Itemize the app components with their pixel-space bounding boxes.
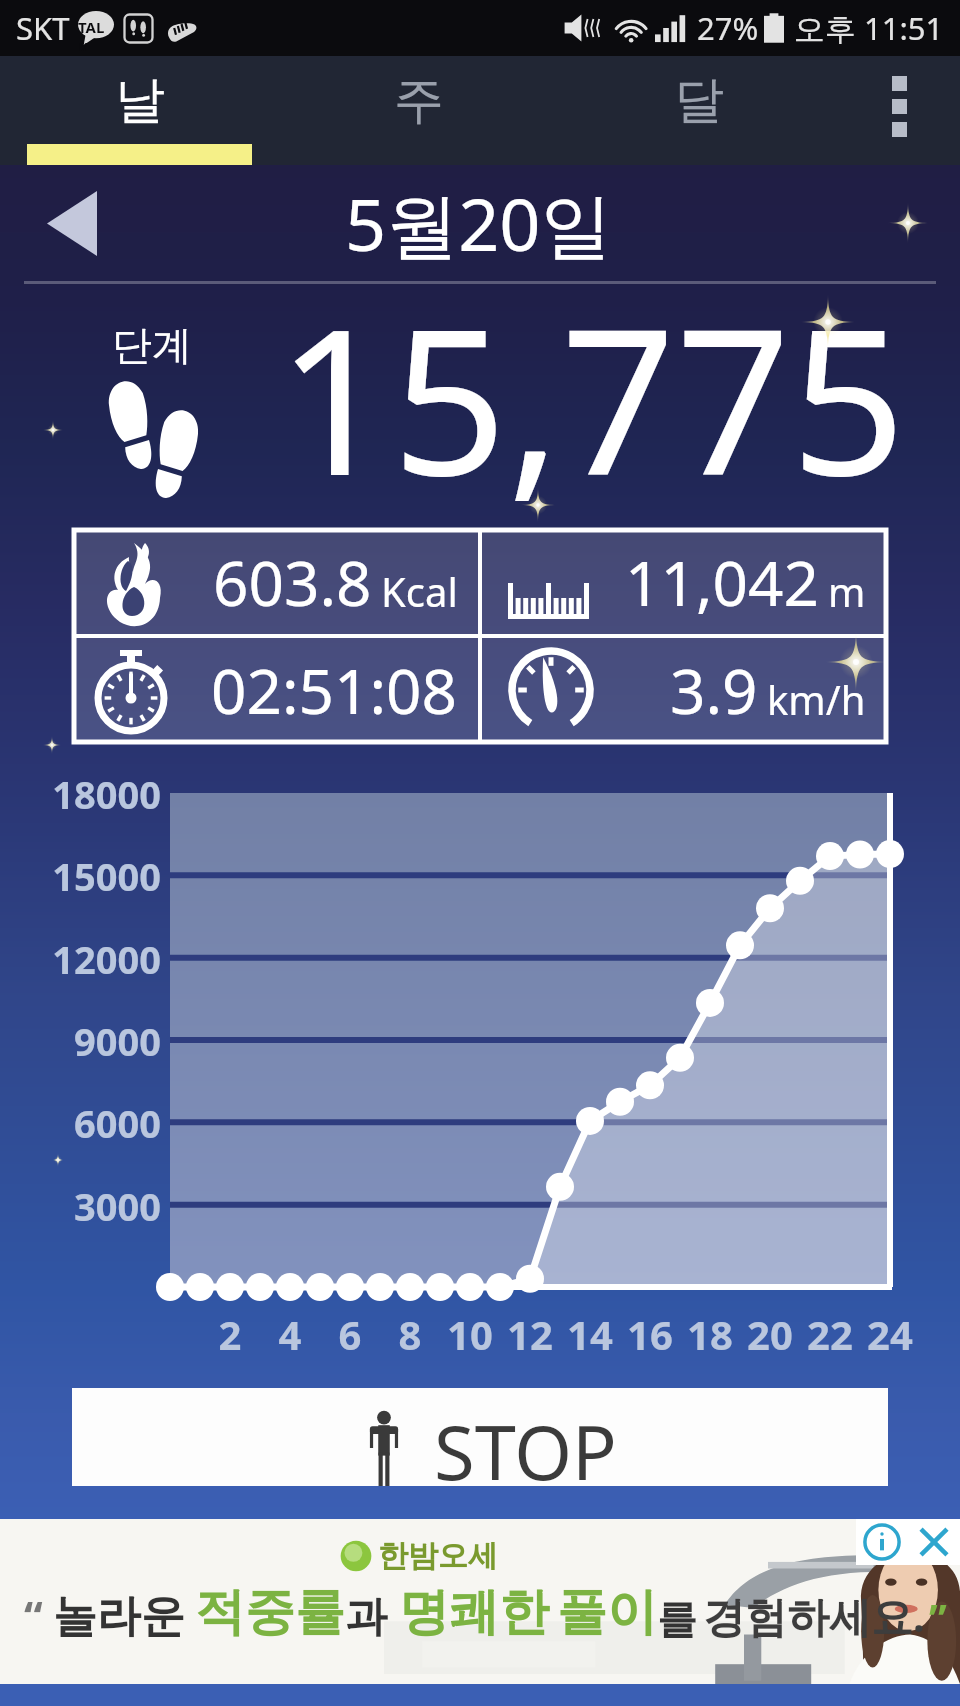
staticText: 풀이 xyxy=(557,1581,657,1644)
button[interactable]: STOP xyxy=(72,1388,888,1486)
staticText: 달 xyxy=(674,69,724,132)
staticText: 12 xyxy=(495,1307,565,1361)
staticText: 주 xyxy=(394,69,444,132)
staticText: 9000 xyxy=(0,1015,161,1067)
staticText: 를 xyxy=(657,1594,697,1644)
button[interactable]: 3.9 xyxy=(480,636,888,744)
staticText: 경험하세요. xyxy=(703,1587,925,1644)
staticText: STOP xyxy=(434,1401,617,1499)
button[interactable]: More options xyxy=(838,56,960,165)
button[interactable]: 달 xyxy=(559,56,839,165)
button[interactable]: Close ad xyxy=(908,1519,960,1565)
staticText: 12000 xyxy=(0,933,161,985)
button[interactable]: 02:51:08 xyxy=(72,636,480,744)
staticText: 오후 11:51 xyxy=(794,7,944,49)
staticText: 날 xyxy=(115,69,165,132)
staticText: km/h xyxy=(767,672,866,726)
button[interactable]: 주 xyxy=(279,56,559,165)
staticText: Kcal xyxy=(381,564,458,618)
staticText: ” xyxy=(929,1590,947,1644)
staticText: “ xyxy=(24,1587,43,1644)
staticText: 10 xyxy=(435,1307,505,1361)
button[interactable]: Previous day xyxy=(34,182,110,270)
button[interactable]: 603.8 xyxy=(72,528,480,636)
staticText: 14 xyxy=(555,1307,625,1361)
staticText: 3.9 xyxy=(670,648,758,732)
staticText: 적중률 xyxy=(195,1581,345,1644)
staticText: 한밤오세 xyxy=(378,1537,498,1575)
staticText: 603.8 xyxy=(213,540,372,624)
staticText: 24 xyxy=(855,1307,925,1361)
staticText: 6 xyxy=(315,1307,385,1361)
staticText: 2 xyxy=(195,1307,265,1361)
staticText: 20 xyxy=(735,1307,805,1361)
staticText: 6000 xyxy=(0,1097,161,1149)
staticText: m xyxy=(828,564,866,618)
staticText: 명쾌한 xyxy=(399,1581,549,1644)
staticText: 18 xyxy=(675,1307,745,1361)
staticText: 11,042 xyxy=(625,540,819,624)
staticText: SKT xyxy=(16,7,70,49)
staticText: 18000 xyxy=(0,768,161,820)
staticText: 3000 xyxy=(0,1180,161,1232)
staticText: 02:51:08 xyxy=(211,648,458,732)
staticText: 놀라운 xyxy=(53,1589,185,1644)
staticText: 27% xyxy=(697,7,759,49)
button[interactable]: 11,042 xyxy=(480,528,888,636)
staticText: 4 xyxy=(255,1307,325,1361)
staticText: 15,775 xyxy=(277,260,906,504)
staticText: 15000 xyxy=(0,850,161,902)
staticText: 16 xyxy=(615,1307,685,1361)
button[interactable]: Ad info xyxy=(856,1519,908,1565)
staticText: TALK xyxy=(78,17,114,51)
staticText: 22 xyxy=(795,1307,865,1361)
staticText: 과 xyxy=(345,1591,387,1644)
staticText: 8 xyxy=(375,1307,445,1361)
button[interactable]: 날 xyxy=(0,56,280,165)
staticText: 5월20일 xyxy=(345,174,613,272)
staticText: 단계 xyxy=(112,320,192,370)
